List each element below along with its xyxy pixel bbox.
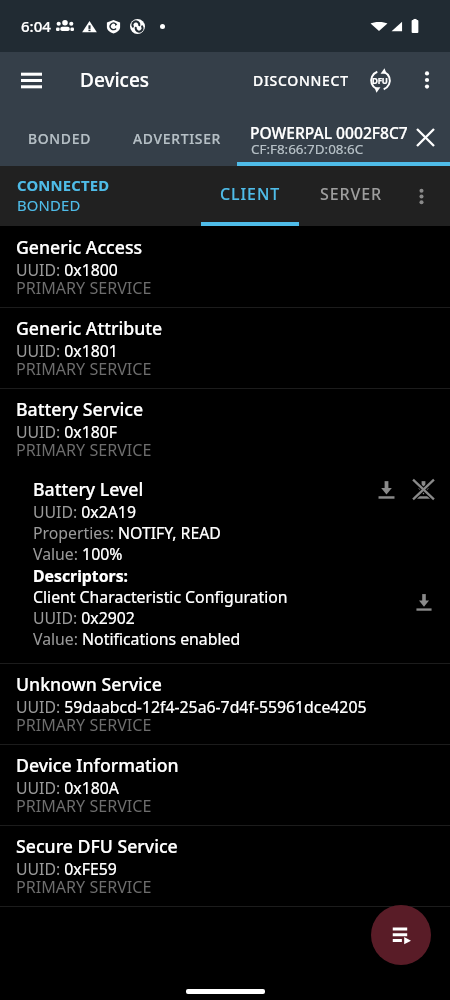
- staticText: UUID: 0x180F: [16, 422, 118, 442]
- button[interactable]: Disable notifications: [405, 471, 441, 507]
- button[interactable]: BONDED: [0, 108, 118, 166]
- button[interactable]: Battery Level: [0, 470, 450, 664]
- staticText: Generic Attribute: [16, 319, 163, 339]
- button[interactable]: CLIENT: [201, 166, 299, 226]
- button[interactable]: SERVER: [299, 166, 404, 226]
- staticText: UUID: 0x1800: [16, 260, 118, 280]
- staticText: PRIMARY SERVICE: [16, 877, 152, 897]
- button[interactable]: More options: [408, 61, 446, 99]
- staticText: Client Characteristic Configuration: [33, 586, 288, 608]
- button[interactable]: Battery Service: [0, 389, 450, 470]
- button[interactable]: Secure DFU Service: [0, 826, 450, 907]
- staticText: PRIMARY SERVICE: [16, 359, 152, 379]
- staticText: Device Information: [16, 756, 179, 776]
- staticText: UUID: 59daabcd-12f4-25a6-7d4f-55961dce42…: [16, 697, 367, 717]
- button[interactable]: ADVERTISER: [118, 108, 237, 166]
- staticText: Battery Level: [33, 479, 144, 501]
- staticText: PRIMARY SERVICE: [16, 278, 152, 298]
- button[interactable]: More options: [402, 177, 440, 215]
- button[interactable]: DISCONNECT: [245, 56, 357, 104]
- staticText: Descriptors:: [33, 565, 129, 587]
- button[interactable]: Generic Access: [0, 227, 450, 308]
- staticText: UUID: 0x2A19: [33, 501, 136, 523]
- button[interactable]: Open navigation drawer: [9, 58, 53, 102]
- staticText: Unknown Service: [16, 675, 162, 695]
- staticText: CLIENT: [220, 183, 281, 205]
- staticText: Devices: [80, 67, 150, 93]
- button[interactable]: Unknown Service: [0, 664, 450, 745]
- staticText: Value: 100%: [33, 543, 123, 565]
- staticText: UUID: 0x180A: [16, 778, 119, 798]
- staticText: CONNECTED: [17, 177, 110, 195]
- staticText: SERVER: [320, 183, 383, 205]
- staticText: Value: Notifications enabled: [33, 628, 241, 650]
- button[interactable]: POWERPAL 0002F8C7: [237, 108, 450, 166]
- staticText: CF:F8:66:7D:08:6C: [251, 141, 364, 158]
- button[interactable]: Read value: [368, 471, 404, 507]
- staticText: Generic Access: [16, 238, 143, 258]
- staticText: UUID: 0x1801: [16, 341, 118, 361]
- button[interactable]: Generic Attribute: [0, 308, 450, 389]
- staticText: BONDED: [17, 197, 81, 215]
- staticText: Secure DFU Service: [16, 837, 178, 857]
- button[interactable]: Device Information: [0, 745, 450, 826]
- staticText: PRIMARY SERVICE: [16, 796, 152, 816]
- staticText: PRIMARY SERVICE: [16, 440, 152, 460]
- button[interactable]: Show log: [371, 905, 431, 965]
- staticText: UUID: 0x2902: [33, 607, 135, 629]
- staticText: BONDED: [28, 129, 91, 148]
- staticText: Properties: NOTIFY, READ: [33, 522, 221, 544]
- staticText: POWERPAL 0002F8C7: [250, 125, 408, 143]
- staticText: DISCONNECT: [253, 71, 349, 90]
- staticText: UUID: 0xFE59: [16, 859, 117, 879]
- button[interactable]: Close: [406, 118, 444, 156]
- staticText: 6:04: [21, 16, 51, 36]
- staticText: DFU: [372, 75, 388, 86]
- staticText: ADVERTISER: [133, 129, 222, 148]
- button[interactable]: DFU: [360, 60, 400, 100]
- staticText: Battery Service: [16, 400, 144, 420]
- staticText: PRIMARY SERVICE: [16, 715, 152, 735]
- button[interactable]: Read descriptor: [406, 584, 442, 620]
